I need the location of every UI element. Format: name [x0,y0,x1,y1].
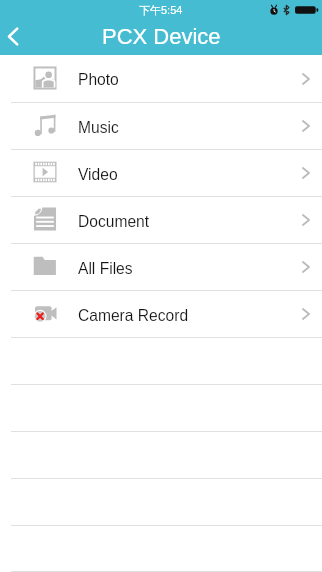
staticText: All Files [78,260,133,277]
staticText: Camera Record [78,307,189,324]
staticText: Video [78,166,118,183]
button[interactable]: All Files [0,244,322,291]
button[interactable]: Photo [0,55,322,103]
staticText: 下午5:54 [139,3,183,17]
staticText: Photo [78,71,119,88]
button[interactable]: Music [0,103,322,150]
button[interactable]: Camera Record [0,291,322,338]
staticText: Document [78,213,150,230]
button[interactable]: Back [0,20,40,55]
button[interactable]: Document [0,197,322,244]
staticText: Music [78,119,119,136]
staticText: PCX Device [102,24,221,49]
button[interactable]: Video [0,150,322,197]
